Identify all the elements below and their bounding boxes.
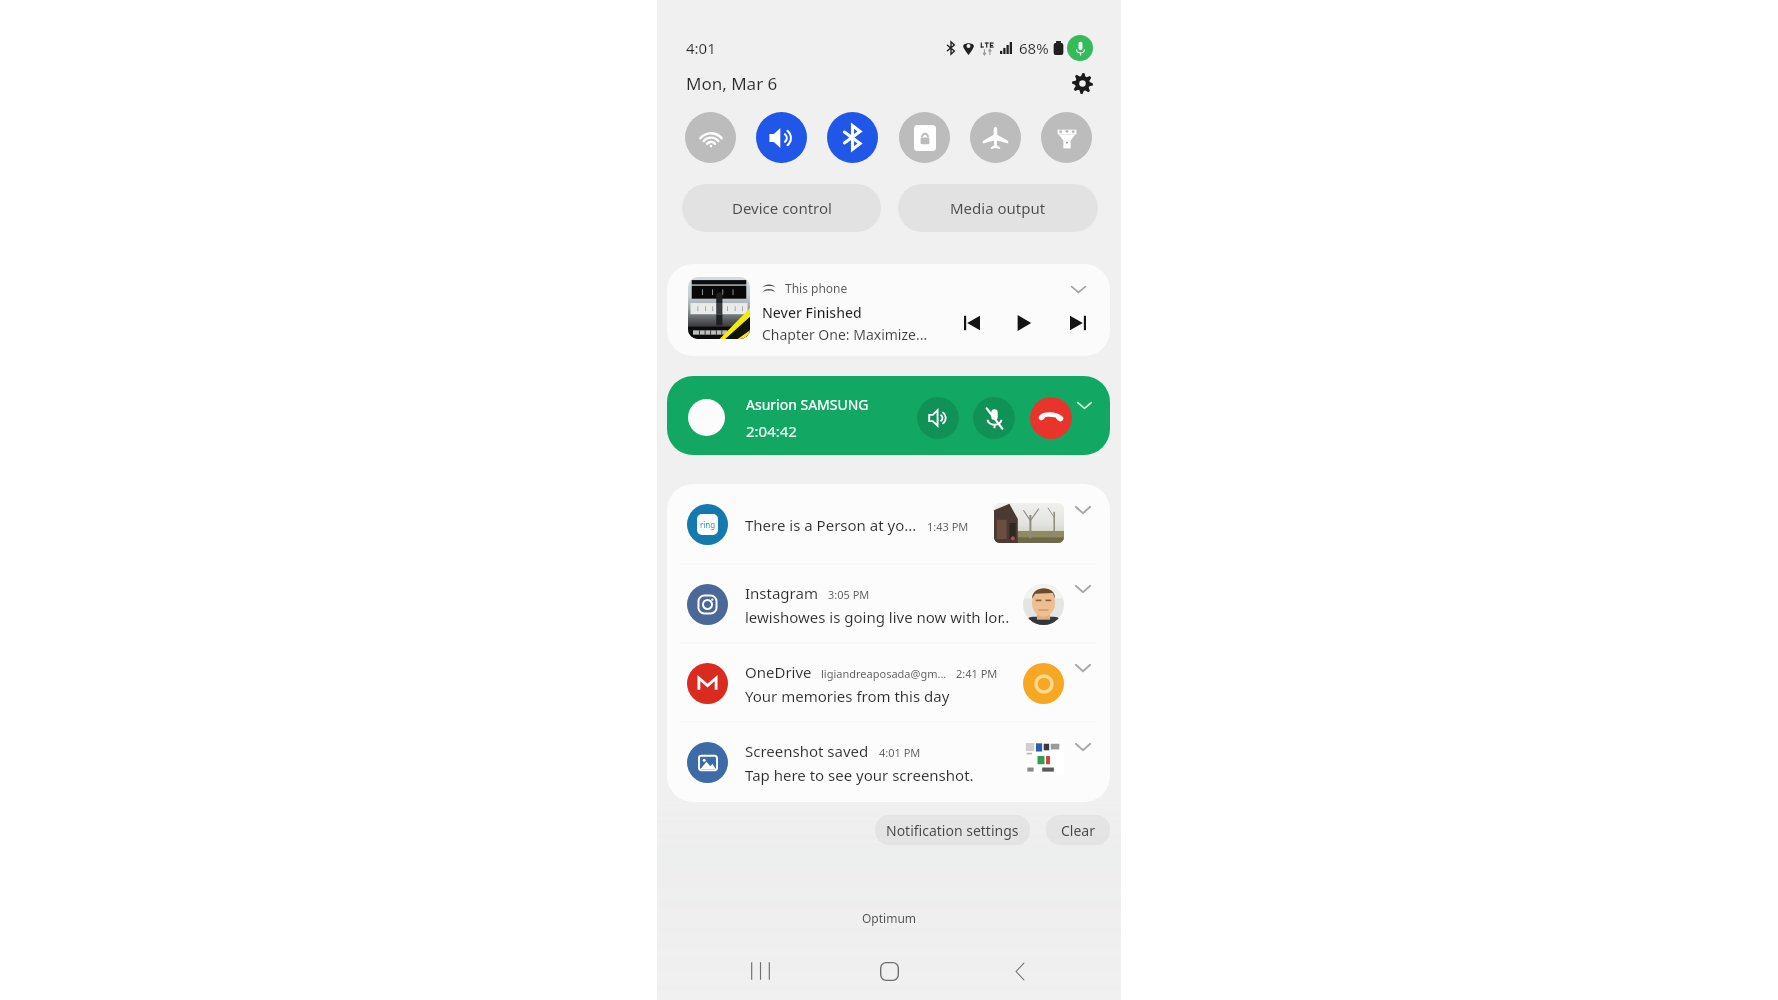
- staticText: ring: [700, 519, 716, 530]
- button[interactable]: Play: [1008, 307, 1040, 339]
- staticText: Your memories from this day: [745, 686, 950, 706]
- staticText: 2:41 PM: [956, 666, 998, 681]
- staticText: 4:01 PM: [879, 745, 921, 760]
- staticText: Screenshot saved: [745, 741, 869, 761]
- button[interactable]: Wi-Fi: [685, 112, 736, 163]
- button[interactable]: ring: [667, 484, 1110, 564]
- button[interactable]: Recents: [739, 950, 781, 992]
- staticText: Clear: [1061, 821, 1095, 840]
- staticText: OneDrive: [745, 662, 812, 682]
- staticText: Tap here to see your screenshot.: [745, 765, 974, 785]
- staticText: 4:01: [686, 38, 716, 58]
- button[interactable]: Sound: [756, 112, 807, 163]
- button[interactable]: Home: [868, 950, 910, 992]
- button[interactable]: Speaker: [917, 397, 959, 439]
- button[interactable]: Settings: [1069, 70, 1095, 96]
- staticText: Never Finished: [762, 303, 862, 322]
- button[interactable]: Previous: [956, 307, 988, 339]
- button[interactable]: Mute: [973, 397, 1015, 439]
- button[interactable]: Instagram: [667, 564, 1110, 643]
- button[interactable]: Media output: [898, 184, 1098, 232]
- button[interactable]: Back: [999, 950, 1041, 992]
- staticText: Asurion SAMSUNG: [746, 395, 869, 414]
- button[interactable]: Device control: [682, 184, 881, 232]
- staticText: 1:43 PM: [927, 519, 969, 534]
- button[interactable]: Airplane mode: [970, 112, 1021, 163]
- staticText: Device control: [732, 198, 832, 218]
- button[interactable]: Clear: [1046, 815, 1110, 845]
- staticText: ligiandreaposada@gm...: [821, 666, 947, 681]
- staticText: 3:05 PM: [828, 587, 870, 602]
- staticText: Chapter One: Maximize...: [762, 325, 928, 344]
- button[interactable]: Screenshot saved: [667, 722, 1110, 801]
- button[interactable]: Flashlight: [1041, 112, 1092, 163]
- staticText: Optimum: [657, 910, 1121, 926]
- button[interactable]: Asurion SAMSUNG: [667, 376, 1110, 455]
- staticText: 68%: [1019, 38, 1049, 58]
- staticText: Media output: [950, 198, 1046, 218]
- button[interactable]: Expand call: [1072, 393, 1096, 417]
- staticText: 2:04:42: [746, 421, 797, 441]
- button[interactable]: Bluetooth: [827, 112, 878, 163]
- staticText: This phone: [785, 280, 848, 296]
- staticText: Instagram: [745, 583, 818, 603]
- staticText: There is a Person at yo...: [745, 515, 917, 535]
- button[interactable]: OneDrive: [667, 643, 1110, 722]
- button[interactable]: Next: [1062, 307, 1094, 339]
- staticText: lewishowes is going live now with lor..: [745, 607, 1010, 627]
- button[interactable]: This phone: [667, 264, 1110, 356]
- button[interactable]: Notification settings: [875, 815, 1030, 845]
- button[interactable]: Auto rotate: [899, 112, 950, 163]
- staticText: Mon, Mar 6: [686, 72, 778, 95]
- button[interactable]: End call: [1030, 397, 1072, 439]
- button[interactable]: Expand media: [1066, 277, 1090, 301]
- staticText: Notification settings: [886, 821, 1019, 840]
